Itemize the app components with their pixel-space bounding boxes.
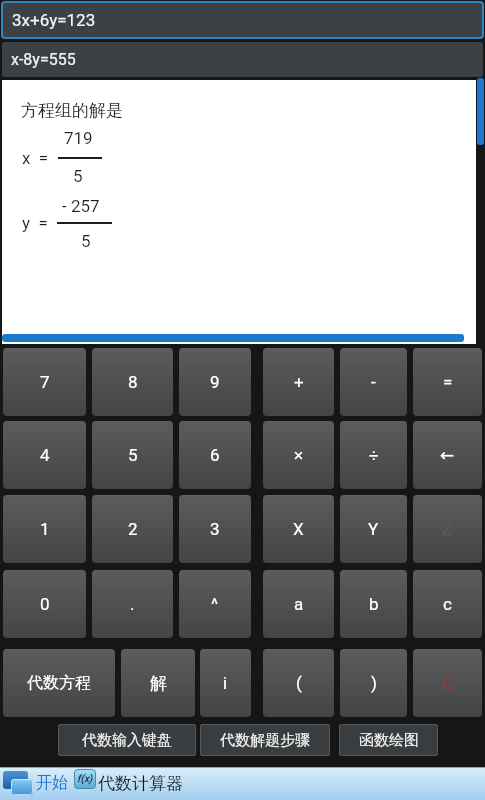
button[interactable]: ÷ (340, 421, 407, 489)
button[interactable]: ) (340, 649, 407, 717)
staticText: 719 (64, 128, 93, 148)
button[interactable]: × (263, 421, 334, 489)
staticText: 3 (210, 519, 220, 539)
staticText: ← (440, 445, 455, 465)
button[interactable]: 3 (179, 495, 251, 563)
staticText: 5 (73, 166, 83, 186)
button[interactable]: 解 (121, 649, 195, 717)
staticText: 1 (40, 519, 50, 539)
button[interactable]: a (263, 570, 334, 638)
button[interactable]: X (263, 495, 334, 563)
button[interactable]: C (413, 649, 482, 717)
staticText: 5 (128, 445, 138, 465)
button[interactable]: x-8y=555 (2, 42, 483, 77)
staticText: 解 (150, 673, 167, 694)
staticText: y = (22, 213, 48, 233)
button[interactable]: Y (340, 495, 407, 563)
button[interactable]: 代数解题步骤 (200, 724, 330, 756)
staticText: 2 (128, 519, 138, 539)
staticText: 代数计算器 (98, 773, 183, 794)
staticText: ^ (211, 594, 219, 614)
staticText: f(x) (77, 773, 93, 785)
staticText: + (294, 372, 304, 392)
staticText: - 257 (62, 196, 100, 216)
button[interactable]: i (200, 649, 251, 717)
button[interactable]: 4 (3, 421, 86, 489)
button[interactable]: 3x+6y=123 (1, 1, 484, 39)
button[interactable]: 0 (3, 570, 86, 638)
staticText: 9 (210, 372, 220, 392)
button[interactable]: + (263, 348, 334, 416)
staticText: 7 (40, 372, 50, 392)
button[interactable]: 7 (3, 348, 86, 416)
staticText: i (223, 673, 228, 693)
staticText: ÷ (369, 445, 379, 465)
button[interactable]: 代数输入键盘 (58, 724, 196, 756)
button[interactable]: b (340, 570, 407, 638)
staticText: 4 (40, 445, 50, 465)
button[interactable]: = (413, 348, 482, 416)
button[interactable]: 9 (179, 348, 251, 416)
button[interactable]: Z (413, 495, 482, 563)
staticText: X (293, 519, 304, 539)
staticText: 开始 (36, 773, 68, 793)
staticText: . (130, 594, 135, 614)
button[interactable]: 2 (92, 495, 173, 563)
staticText: c (443, 594, 452, 614)
button[interactable]: 函数绘图 (339, 724, 438, 756)
staticText: 方程组的解是 (21, 100, 123, 121)
staticText: b (369, 594, 379, 614)
staticText: x-8y=555 (11, 50, 76, 69)
staticText: 5 (81, 231, 91, 251)
staticText: × (294, 445, 304, 465)
staticText: = (443, 372, 453, 392)
staticText: 8 (128, 372, 138, 392)
button[interactable]: 代数方程 (3, 649, 115, 717)
button[interactable]: - (340, 348, 407, 416)
staticText: x = (22, 148, 49, 168)
staticText: Z (442, 519, 453, 539)
staticText: ( (296, 673, 302, 693)
staticText: C (442, 673, 454, 693)
button[interactable]: ( (263, 649, 334, 717)
button[interactable]: ← (413, 421, 482, 489)
staticText: ) (371, 673, 377, 693)
staticText: a (294, 594, 304, 614)
staticText: - (371, 372, 376, 392)
button[interactable]: 6 (179, 421, 251, 489)
staticText: 6 (210, 445, 220, 465)
button[interactable]: ^ (179, 570, 251, 638)
button[interactable]: c (413, 570, 482, 638)
staticText: Y (368, 519, 379, 539)
button[interactable]: 开始 (36, 767, 68, 799)
staticText: 代数方程 (27, 673, 91, 693)
staticText: 代数解题步骤 (220, 731, 310, 750)
staticText: 函数绘图 (359, 731, 419, 750)
staticText: 0 (40, 594, 50, 614)
button[interactable]: 1 (3, 495, 86, 563)
staticText: 代数输入键盘 (82, 731, 172, 750)
button[interactable]: 8 (92, 348, 173, 416)
button[interactable]: 5 (92, 421, 173, 489)
button[interactable]: . (92, 570, 173, 638)
staticText: 3x+6y=123 (12, 10, 96, 30)
